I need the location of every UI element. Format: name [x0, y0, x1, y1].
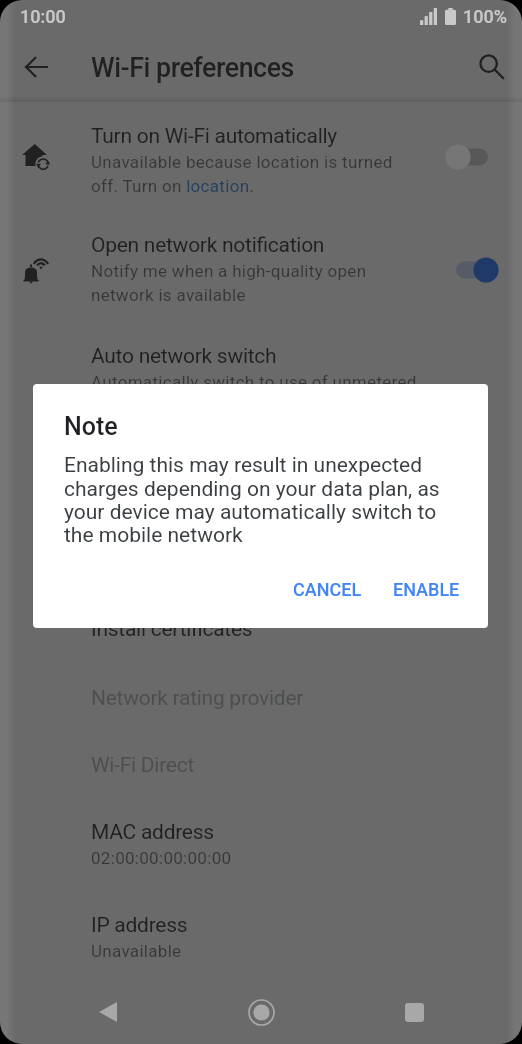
staticText: Auto network switch [91, 344, 277, 369]
button[interactable]: Wi-Fi Direct [0, 743, 522, 789]
button[interactable] [0, 114, 522, 206]
button[interactable]: Recent apps [388, 986, 440, 1038]
staticText: CANCEL [293, 579, 362, 600]
staticText: 10:00 [20, 6, 66, 27]
staticText: Automatically switch to use of unmetered… [91, 372, 421, 416]
button[interactable] [0, 224, 522, 316]
button[interactable]: Navigate up [8, 39, 64, 95]
staticText: 100% [463, 6, 507, 27]
staticText: Network rating provider [91, 686, 304, 711]
button[interactable]: Switch off [440, 131, 502, 183]
button[interactable]: ENABLE [384, 570, 469, 609]
button[interactable]: Install certificates [0, 607, 522, 653]
button[interactable]: CANCEL [284, 570, 371, 609]
staticText: Note [64, 412, 118, 441]
button[interactable]: Back [82, 986, 134, 1038]
staticText: Install certificates [91, 617, 253, 642]
staticText: Unavailable [91, 941, 182, 961]
staticText: MAC address [91, 820, 214, 845]
button[interactable]: Search [464, 39, 520, 95]
staticText: ENABLE [393, 579, 460, 600]
staticText: Enabling this may result in unexpected c… [64, 453, 456, 547]
button[interactable]: Home [235, 986, 287, 1038]
staticText: Wi-Fi preferences [91, 52, 294, 83]
button[interactable] [0, 905, 522, 975]
staticText: Open network notification [91, 233, 325, 258]
button[interactable] [0, 336, 522, 406]
staticText: IP address [91, 913, 188, 938]
button[interactable]: Switch on [442, 244, 504, 296]
button[interactable] [0, 812, 522, 882]
staticText: Notify me when a high-quality open netwo… [91, 261, 391, 305]
button[interactable]: Network rating provider [0, 676, 522, 722]
staticText: 02:00:00:00:00:00 [91, 848, 232, 868]
staticText: Unavailable because location is turned o… [91, 152, 399, 196]
staticText: Turn on Wi-Fi automatically [91, 124, 338, 149]
staticText: Wi-Fi Direct [91, 753, 195, 778]
